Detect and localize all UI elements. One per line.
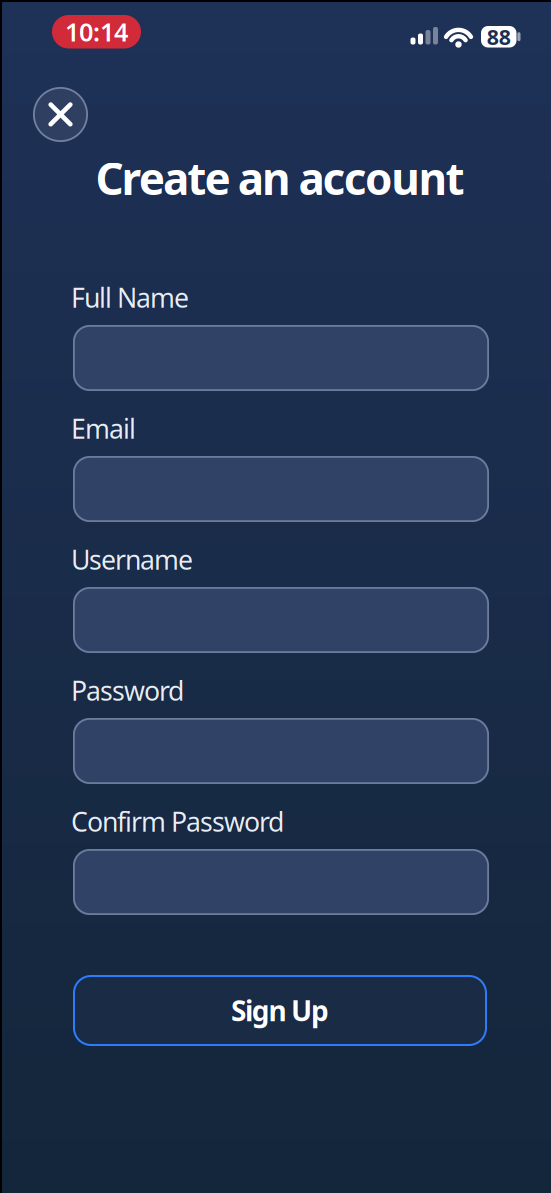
button[interactable] bbox=[73, 718, 489, 784]
button[interactable]: Sign Up bbox=[73, 975, 487, 1046]
staticText: Confirm Password bbox=[71, 804, 284, 839]
button[interactable] bbox=[73, 587, 489, 653]
button[interactable] bbox=[73, 849, 489, 915]
staticText: Create an account bbox=[95, 149, 465, 207]
staticText: Password bbox=[71, 673, 184, 708]
staticText: Sign Up bbox=[231, 992, 329, 1029]
button[interactable] bbox=[33, 87, 88, 142]
staticText: 88 bbox=[487, 23, 511, 51]
staticText: Username bbox=[71, 542, 193, 577]
button[interactable] bbox=[73, 325, 489, 391]
staticText: Full Name bbox=[71, 280, 189, 315]
staticText: 10:14 bbox=[65, 15, 128, 48]
staticText: Email bbox=[71, 411, 136, 446]
button[interactable] bbox=[73, 456, 489, 522]
